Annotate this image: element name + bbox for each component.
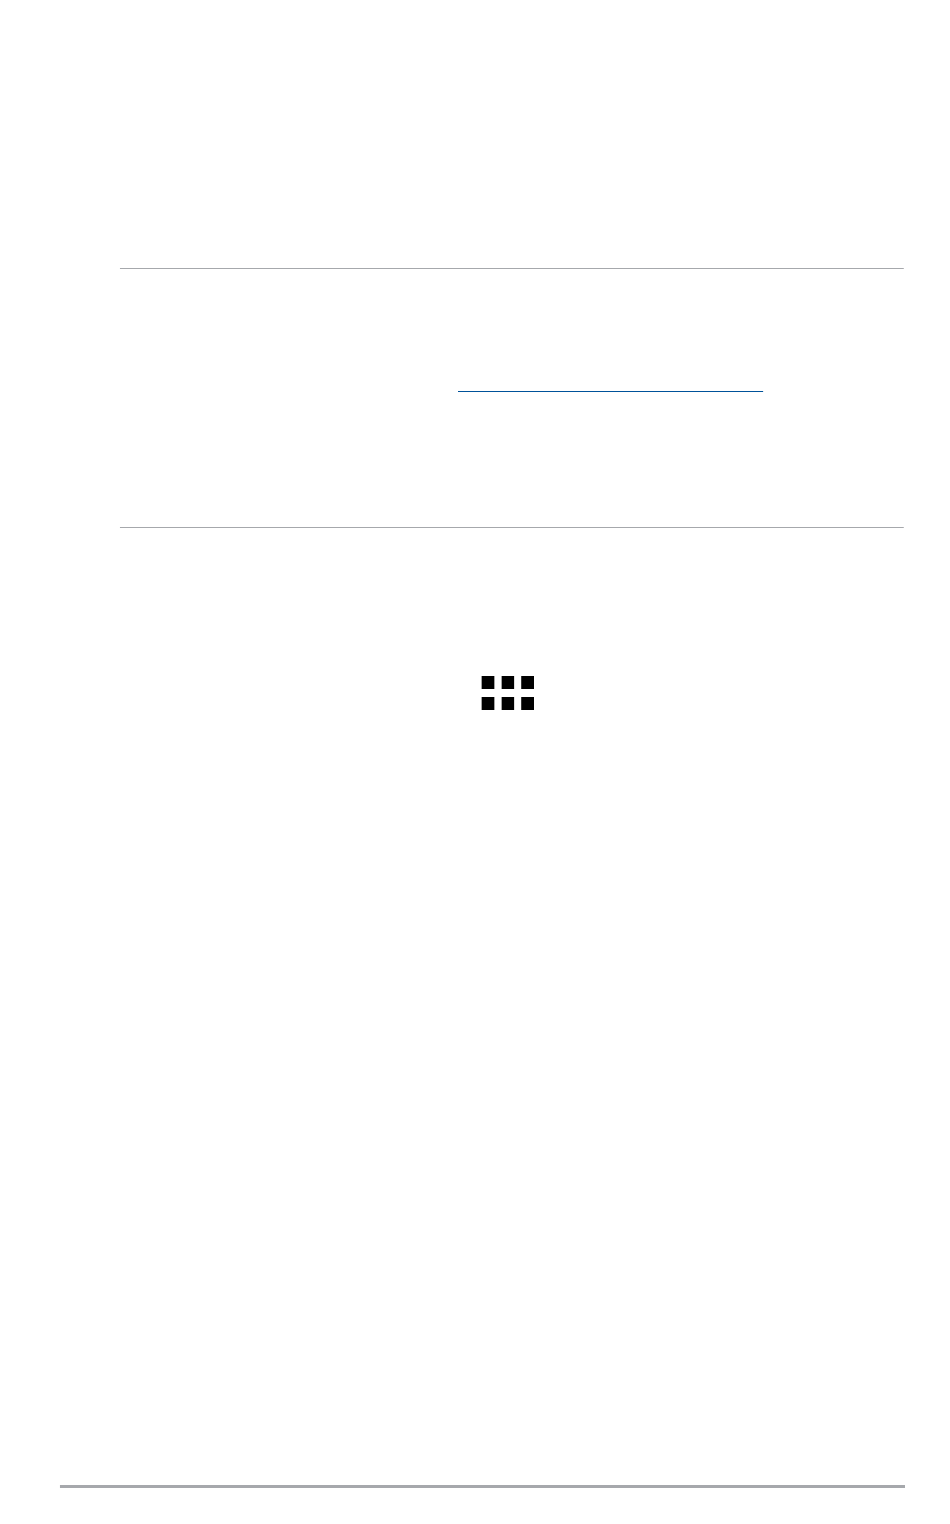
button[interactable]: Show grid <box>482 676 534 710</box>
